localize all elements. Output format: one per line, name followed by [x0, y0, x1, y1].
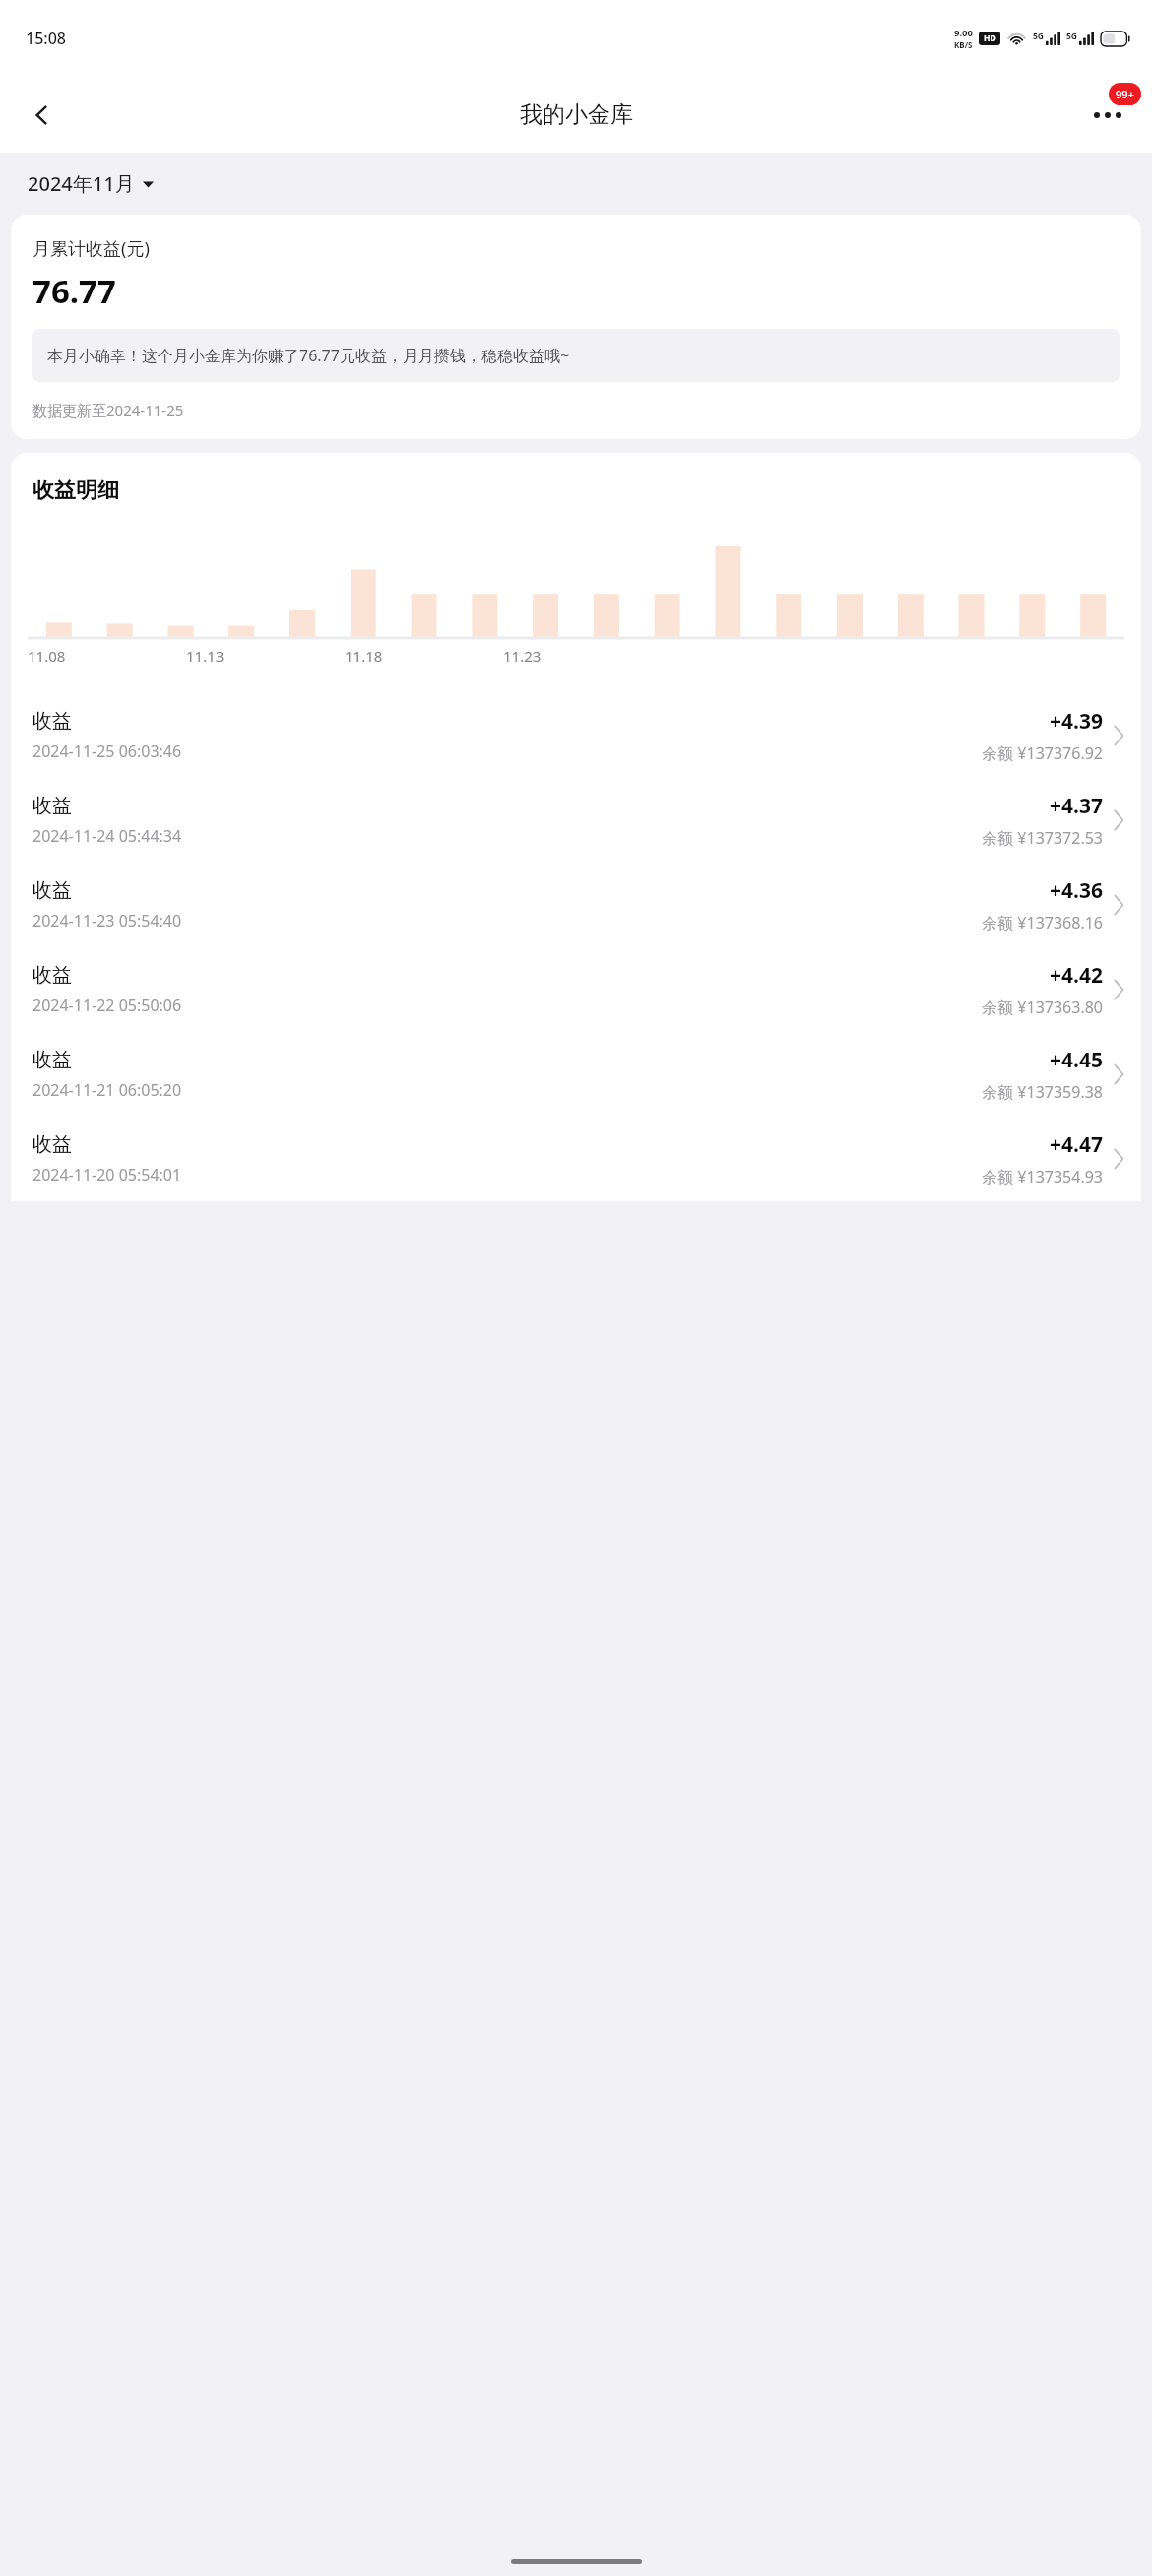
staticText: 11.23: [503, 646, 542, 666]
staticText: KB/S: [954, 39, 973, 50]
staticText: HD: [984, 32, 996, 44]
staticText: 9.00: [954, 27, 973, 39]
staticText: +4.47: [1050, 1130, 1103, 1159]
staticText: 余额 ¥137368.16: [982, 912, 1103, 934]
staticText: 收益: [32, 709, 72, 734]
staticText: 余额 ¥137354.93: [982, 1166, 1103, 1188]
staticText: +4.45: [1050, 1046, 1103, 1074]
staticText: 2024-11-21 06:05:20: [32, 1079, 182, 1101]
staticText: 收益: [32, 1048, 72, 1072]
staticText: 2024-11-22 05:50:06: [32, 995, 182, 1016]
staticText: +4.37: [1050, 792, 1103, 820]
button[interactable]: 2024年11月: [26, 166, 156, 201]
button[interactable]: 收益: [11, 778, 1141, 863]
button[interactable]: More options: [1077, 85, 1138, 146]
staticText: 11.18: [345, 646, 383, 666]
staticText: 2024-11-20 05:54:01: [32, 1164, 182, 1186]
staticText: 5G: [1033, 31, 1045, 42]
staticText: +4.39: [1050, 707, 1103, 736]
button[interactable]: Back: [14, 88, 69, 143]
staticText: 我的小金库: [520, 100, 633, 129]
staticText: 收益: [32, 963, 72, 988]
staticText: 本月小确幸！这个月小金库为你赚了76.77元收益，月月攒钱，稳稳收益哦~: [47, 345, 570, 366]
staticText: 15:08: [26, 28, 66, 49]
staticText: 收益明细: [32, 477, 119, 504]
staticText: 11.08: [28, 646, 66, 666]
staticText: 余额 ¥137363.80: [982, 997, 1103, 1018]
staticText: 99+: [1116, 87, 1134, 101]
staticText: 余额 ¥137372.53: [982, 827, 1103, 849]
staticText: 数据更新至2024-11-25: [32, 400, 184, 419]
button[interactable]: 收益: [11, 693, 1141, 778]
staticText: 76.77: [32, 269, 116, 313]
staticText: 余额 ¥137376.92: [982, 742, 1103, 764]
staticText: 11.13: [186, 646, 224, 666]
staticText: 5G: [1066, 31, 1078, 42]
button[interactable]: 收益: [11, 863, 1141, 947]
staticText: 收益: [32, 878, 72, 903]
button[interactable]: 收益: [11, 947, 1141, 1032]
staticText: 2024年11月: [28, 170, 135, 197]
button[interactable]: 收益: [11, 1117, 1141, 1201]
staticText: 2024-11-23 05:54:40: [32, 910, 182, 932]
staticText: 2024-11-24 05:44:34: [32, 825, 182, 847]
staticText: 月累计收益(元): [32, 236, 150, 261]
staticText: 余额 ¥137359.38: [982, 1081, 1103, 1103]
staticText: 收益: [32, 1132, 72, 1157]
button[interactable]: 收益: [11, 1032, 1141, 1117]
staticText: +4.42: [1050, 961, 1103, 990]
staticText: 2024-11-25 06:03:46: [32, 741, 182, 762]
staticText: +4.36: [1050, 876, 1103, 905]
staticText: 收益: [32, 794, 72, 818]
